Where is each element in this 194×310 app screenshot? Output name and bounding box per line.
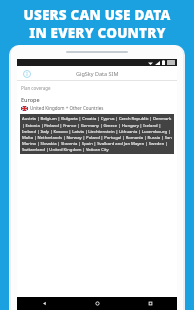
staticText: USERS CAN USE DATA: [23, 6, 171, 24]
button[interactable]: Home: [71, 297, 124, 310]
staticText: Plan coverage: [21, 85, 51, 91]
staticText: Austria | Belgium | Bulgaria | Croatia |…: [22, 116, 172, 152]
staticText: United Kingdom + Other Countries: [30, 105, 104, 111]
button[interactable]: Recents: [124, 297, 177, 310]
button[interactable]: Info: [20, 67, 33, 80]
staticText: GigSky Data SIM: [76, 70, 119, 77]
button[interactable]: Back: [17, 297, 71, 310]
staticText: Europe: [21, 96, 40, 103]
staticText: IN EVERY COUNTRY: [29, 24, 166, 42]
button[interactable]: United Kingdom + Other Countries: [21, 105, 177, 111]
